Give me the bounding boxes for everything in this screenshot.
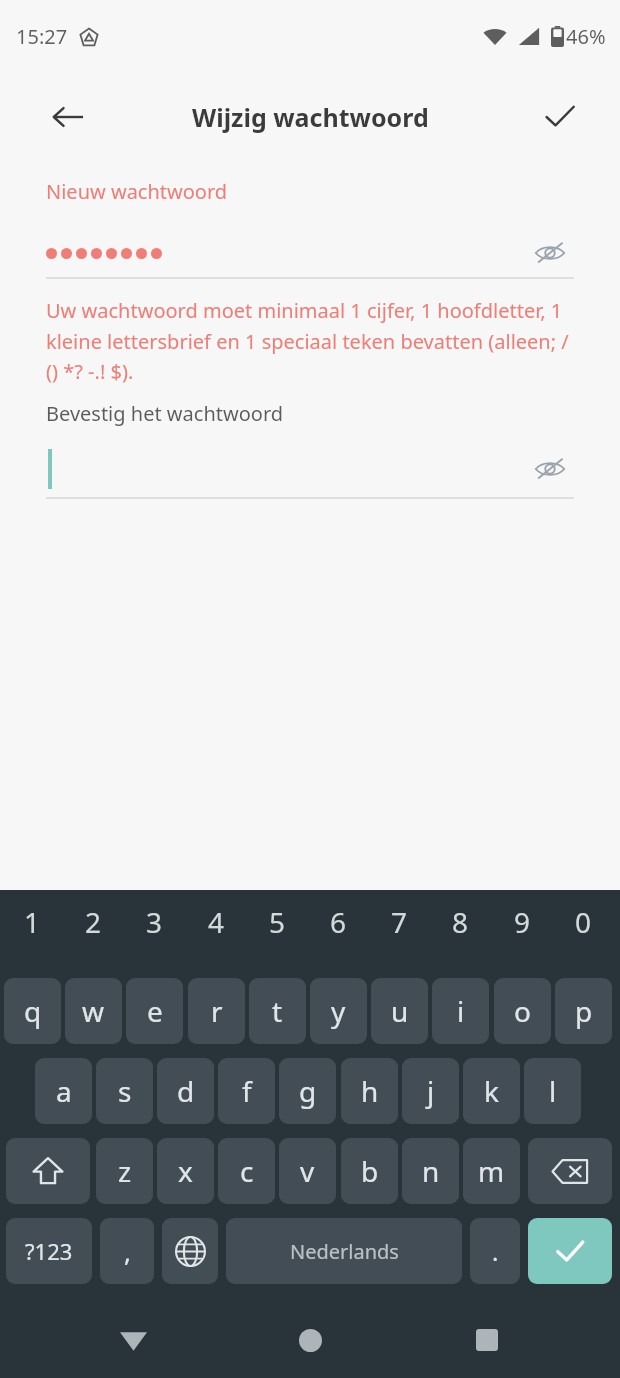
staticText: m <box>478 1152 505 1190</box>
button[interactable]: e <box>126 978 183 1044</box>
staticText: d <box>177 1072 195 1110</box>
staticText: 46% <box>566 23 606 50</box>
button[interactable]: r <box>188 978 245 1044</box>
staticText: o <box>514 992 531 1030</box>
staticText: 0 <box>575 903 592 941</box>
button[interactable]: 3 <box>126 898 183 946</box>
staticText: Wijzig wachtwoord <box>192 100 429 134</box>
staticText: k <box>484 1072 499 1110</box>
staticText: v <box>300 1152 315 1190</box>
button[interactable]: Backspace <box>528 1138 612 1204</box>
staticText: Bevestig het wachtwoord <box>46 400 284 427</box>
button[interactable]: l <box>524 1058 581 1124</box>
button[interactable]: Back <box>38 87 98 147</box>
staticText: 2 <box>85 903 102 941</box>
button[interactable]: 2 <box>65 898 122 946</box>
staticText: j <box>427 1072 435 1110</box>
staticText: 15:27 <box>16 23 68 50</box>
staticText: e <box>147 992 163 1030</box>
button[interactable]: Period <box>470 1218 520 1284</box>
button[interactable]: a <box>35 1058 92 1124</box>
button[interactable]: 0 <box>555 898 612 946</box>
button[interactable]: b <box>341 1138 398 1204</box>
staticText: . <box>492 1235 499 1268</box>
staticText: i <box>457 992 465 1030</box>
button[interactable]: k <box>463 1058 520 1124</box>
button[interactable]: Shift <box>6 1138 90 1204</box>
button[interactable]: j <box>402 1058 459 1124</box>
staticText: g <box>299 1072 317 1110</box>
staticText: 8 <box>452 903 469 941</box>
staticText: u <box>391 992 409 1030</box>
button[interactable]: t <box>249 978 306 1044</box>
button[interactable]: 4 <box>188 898 245 946</box>
staticText: y <box>331 992 346 1030</box>
button[interactable]: Show password <box>526 229 574 277</box>
staticText: Nieuw wachtwoord <box>46 178 228 205</box>
button[interactable]: p <box>555 978 612 1044</box>
staticText: 6 <box>330 903 347 941</box>
button[interactable]: Recents <box>460 1313 514 1367</box>
staticText: Uw wachtwoord moet minimaal 1 cijfer, 1 … <box>46 297 574 384</box>
staticText: l <box>549 1072 557 1110</box>
staticText: w <box>82 992 105 1030</box>
button[interactable]: 6 <box>310 898 367 946</box>
staticText: p <box>575 992 593 1030</box>
staticText: t <box>272 992 283 1030</box>
button[interactable]: Change language <box>162 1218 218 1284</box>
staticText: , <box>124 1234 131 1269</box>
button[interactable]: Show confirm password <box>526 445 574 493</box>
staticText: Nederlands <box>290 1238 399 1265</box>
button[interactable]: z <box>96 1138 153 1204</box>
button[interactable]: g <box>279 1058 336 1124</box>
staticText: 7 <box>391 903 408 941</box>
staticText: ?123 <box>25 1236 73 1266</box>
button[interactable]: q <box>4 978 61 1044</box>
button[interactable]: i <box>432 978 489 1044</box>
button[interactable]: Home <box>283 1313 337 1367</box>
button[interactable]: c <box>218 1138 275 1204</box>
button[interactable]: s <box>96 1058 153 1124</box>
staticText: 9 <box>514 903 531 941</box>
staticText: c <box>240 1152 254 1190</box>
button[interactable]: m <box>463 1138 520 1204</box>
staticText: r <box>211 992 223 1030</box>
button[interactable]: 1 <box>4 898 61 946</box>
staticText: s <box>118 1072 132 1110</box>
button[interactable]: y <box>310 978 367 1044</box>
button[interactable]: v <box>279 1138 336 1204</box>
button[interactable]: d <box>157 1058 214 1124</box>
staticText: 1 <box>24 903 41 941</box>
staticText: 3 <box>146 903 163 941</box>
staticText: z <box>118 1152 132 1190</box>
button[interactable]: Nederlands <box>226 1218 462 1284</box>
staticText: f <box>242 1072 252 1110</box>
staticText: h <box>361 1072 379 1110</box>
staticText: 5 <box>269 903 286 941</box>
button[interactable]: o <box>494 978 551 1044</box>
button[interactable]: 9 <box>494 898 551 946</box>
button[interactable]: f <box>218 1058 275 1124</box>
button[interactable]: n <box>402 1138 459 1204</box>
button[interactable]: Save <box>530 87 590 147</box>
button[interactable]: w <box>65 978 122 1044</box>
staticText: x <box>178 1152 193 1190</box>
staticText: 4 <box>208 903 225 941</box>
button[interactable]: x <box>157 1138 214 1204</box>
button[interactable]: Comma <box>100 1218 154 1284</box>
button[interactable]: Enter <box>528 1218 612 1284</box>
button[interactable]: u <box>371 978 428 1044</box>
staticText: n <box>422 1152 440 1190</box>
button[interactable]: h <box>341 1058 398 1124</box>
button[interactable]: ?123 <box>6 1218 92 1284</box>
button[interactable]: 8 <box>432 898 489 946</box>
staticText: q <box>24 992 42 1030</box>
button[interactable]: 7 <box>371 898 428 946</box>
button[interactable]: Back <box>106 1313 160 1367</box>
button[interactable]: 5 <box>249 898 306 946</box>
staticText: a <box>56 1072 72 1110</box>
staticText: b <box>361 1152 379 1190</box>
